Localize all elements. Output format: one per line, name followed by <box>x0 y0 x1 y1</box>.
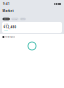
staticText: 9:41 <box>3 2 10 6</box>
staticText: Stocks <box>4 18 9 20</box>
staticText: $12,480 <box>3 25 16 29</box>
staticText: Market <box>2 9 13 13</box>
button[interactable]: Crypto <box>11 18 18 20</box>
button[interactable]: ETFs <box>20 18 26 20</box>
staticText: +2.4% <box>3 29 7 31</box>
staticText: Performance <box>5 36 15 38</box>
staticText: Portfolio <box>3 23 8 25</box>
button[interactable]: Stocks <box>2 18 10 20</box>
staticText: Crypto <box>12 18 17 20</box>
